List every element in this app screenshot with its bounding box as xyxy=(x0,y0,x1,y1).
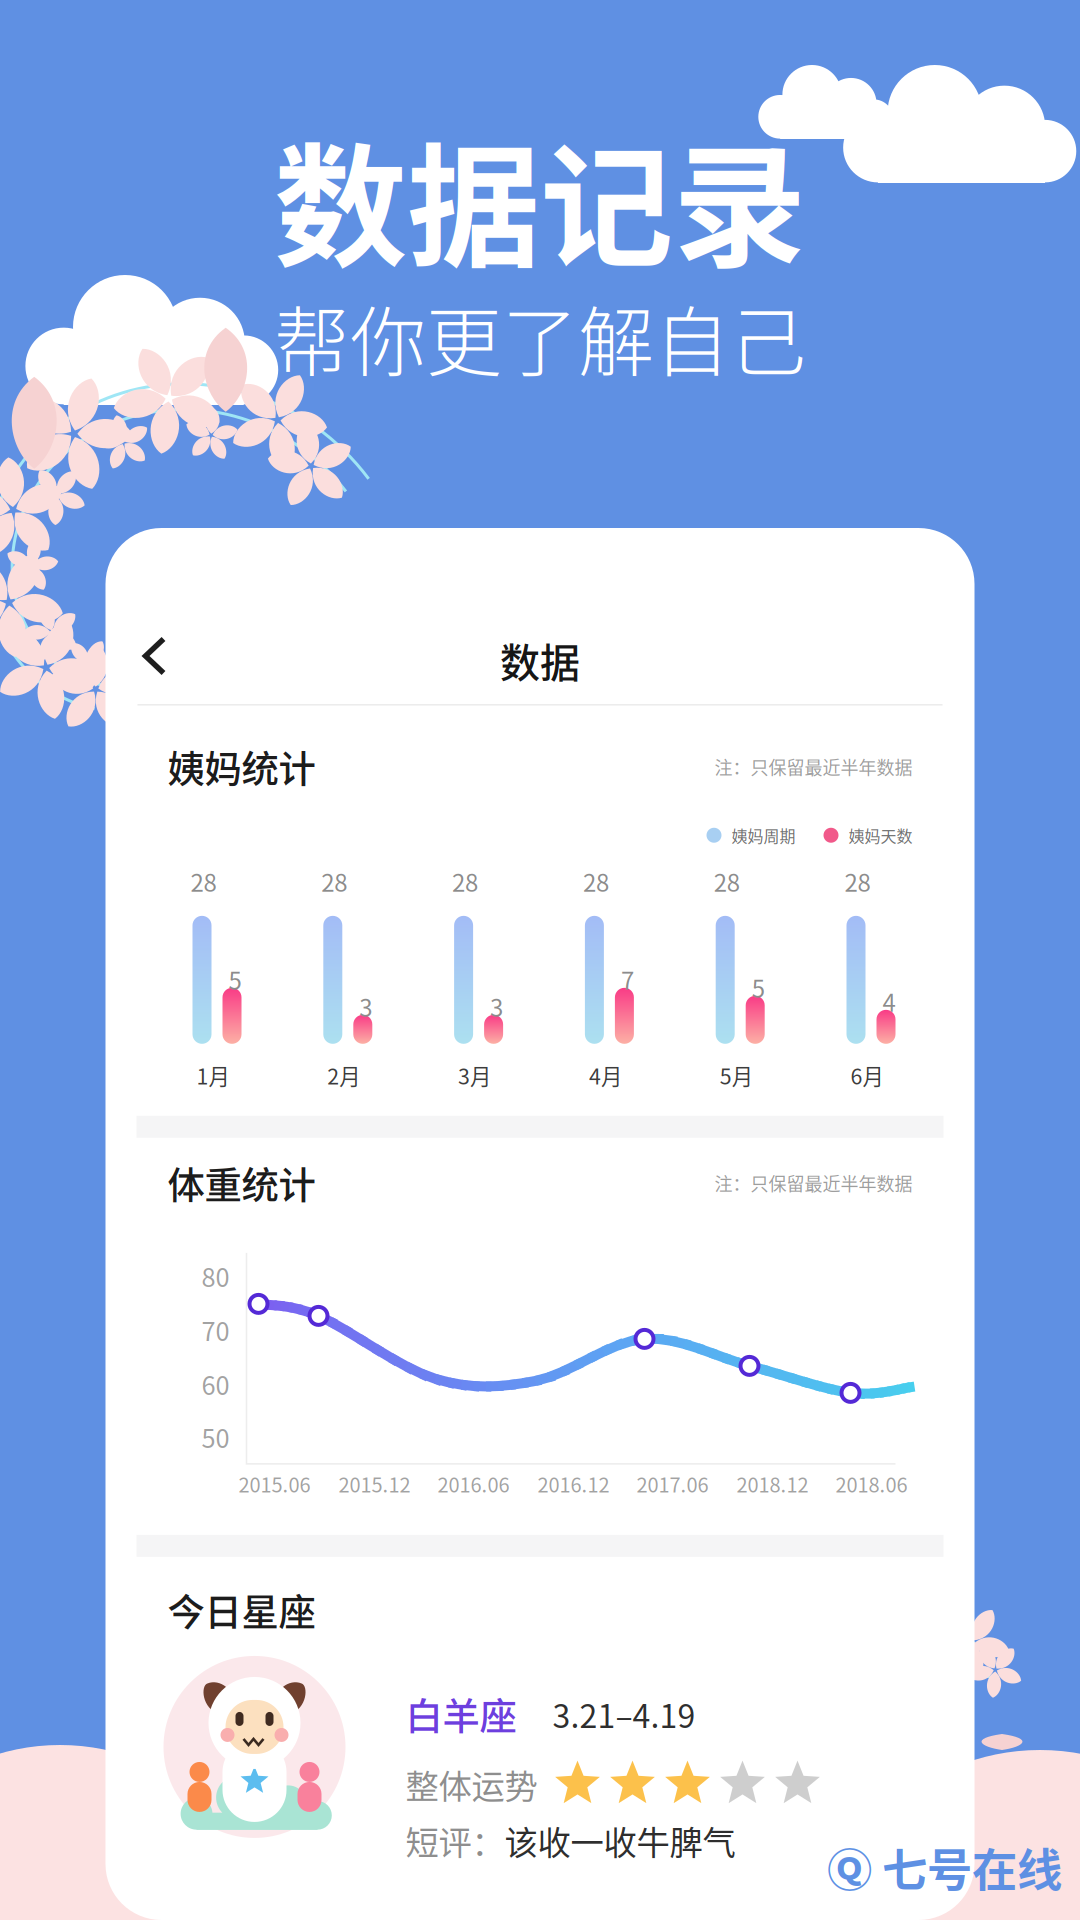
button[interactable]: Back xyxy=(105,606,203,706)
staticText: 2018.06 xyxy=(835,1469,907,1498)
staticText: 5 xyxy=(752,970,765,1005)
staticText: 3.21–4.19 xyxy=(552,1691,695,1737)
staticText: 3 xyxy=(490,989,503,1024)
staticText: 2015.06 xyxy=(238,1469,310,1498)
staticText: 数据 xyxy=(500,631,580,689)
staticText: 该收一收牛脾气 xyxy=(504,1816,735,1865)
staticText: 今日星座 xyxy=(167,1583,315,1637)
staticText: 整体运势 xyxy=(405,1760,537,1808)
staticText: 姨妈周期 xyxy=(731,824,795,847)
staticText: 70 xyxy=(201,1311,229,1348)
staticText: 姨妈天数 xyxy=(848,824,912,847)
staticText: 28 xyxy=(190,864,216,899)
staticText: 60 xyxy=(201,1365,229,1402)
staticText: 28 xyxy=(583,864,609,899)
staticText: 短评： xyxy=(405,1816,504,1865)
staticText: 80 xyxy=(201,1257,229,1294)
staticText: 28 xyxy=(714,864,740,899)
staticText: 7 xyxy=(621,962,634,997)
staticText: 姨妈统计 xyxy=(167,740,315,794)
staticText: 数据记录 xyxy=(274,101,806,294)
staticText: 5月 xyxy=(720,1060,753,1091)
staticText: 体重统计 xyxy=(167,1156,315,1210)
staticText: 28 xyxy=(844,864,870,899)
staticText: 5 xyxy=(228,962,241,997)
staticText: 注：只保留最近半年数据 xyxy=(714,754,912,780)
staticText: 28 xyxy=(452,864,478,899)
staticText: 3月 xyxy=(458,1060,491,1091)
staticText: 2018.12 xyxy=(736,1469,808,1498)
staticText: 2017.06 xyxy=(636,1469,708,1498)
staticText: 50 xyxy=(201,1418,229,1455)
staticText: 2月 xyxy=(327,1060,360,1091)
staticText: 1月 xyxy=(196,1060,229,1091)
staticText: 注：只保留最近半年数据 xyxy=(714,1170,912,1196)
staticText: 2016.12 xyxy=(537,1469,609,1498)
staticText: 2016.06 xyxy=(437,1469,509,1498)
staticText: 28 xyxy=(321,864,347,899)
staticText: 3 xyxy=(359,989,372,1024)
staticText: 帮你更了解自己 xyxy=(274,282,806,392)
staticText: Ⓠ 七号在线 xyxy=(827,1834,1062,1900)
staticText: 白羊座 xyxy=(405,1687,516,1741)
staticText: 4 xyxy=(882,984,895,1019)
staticText: 4月 xyxy=(589,1060,622,1091)
staticText: 6月 xyxy=(850,1060,883,1091)
staticText: 2015.12 xyxy=(338,1469,410,1498)
